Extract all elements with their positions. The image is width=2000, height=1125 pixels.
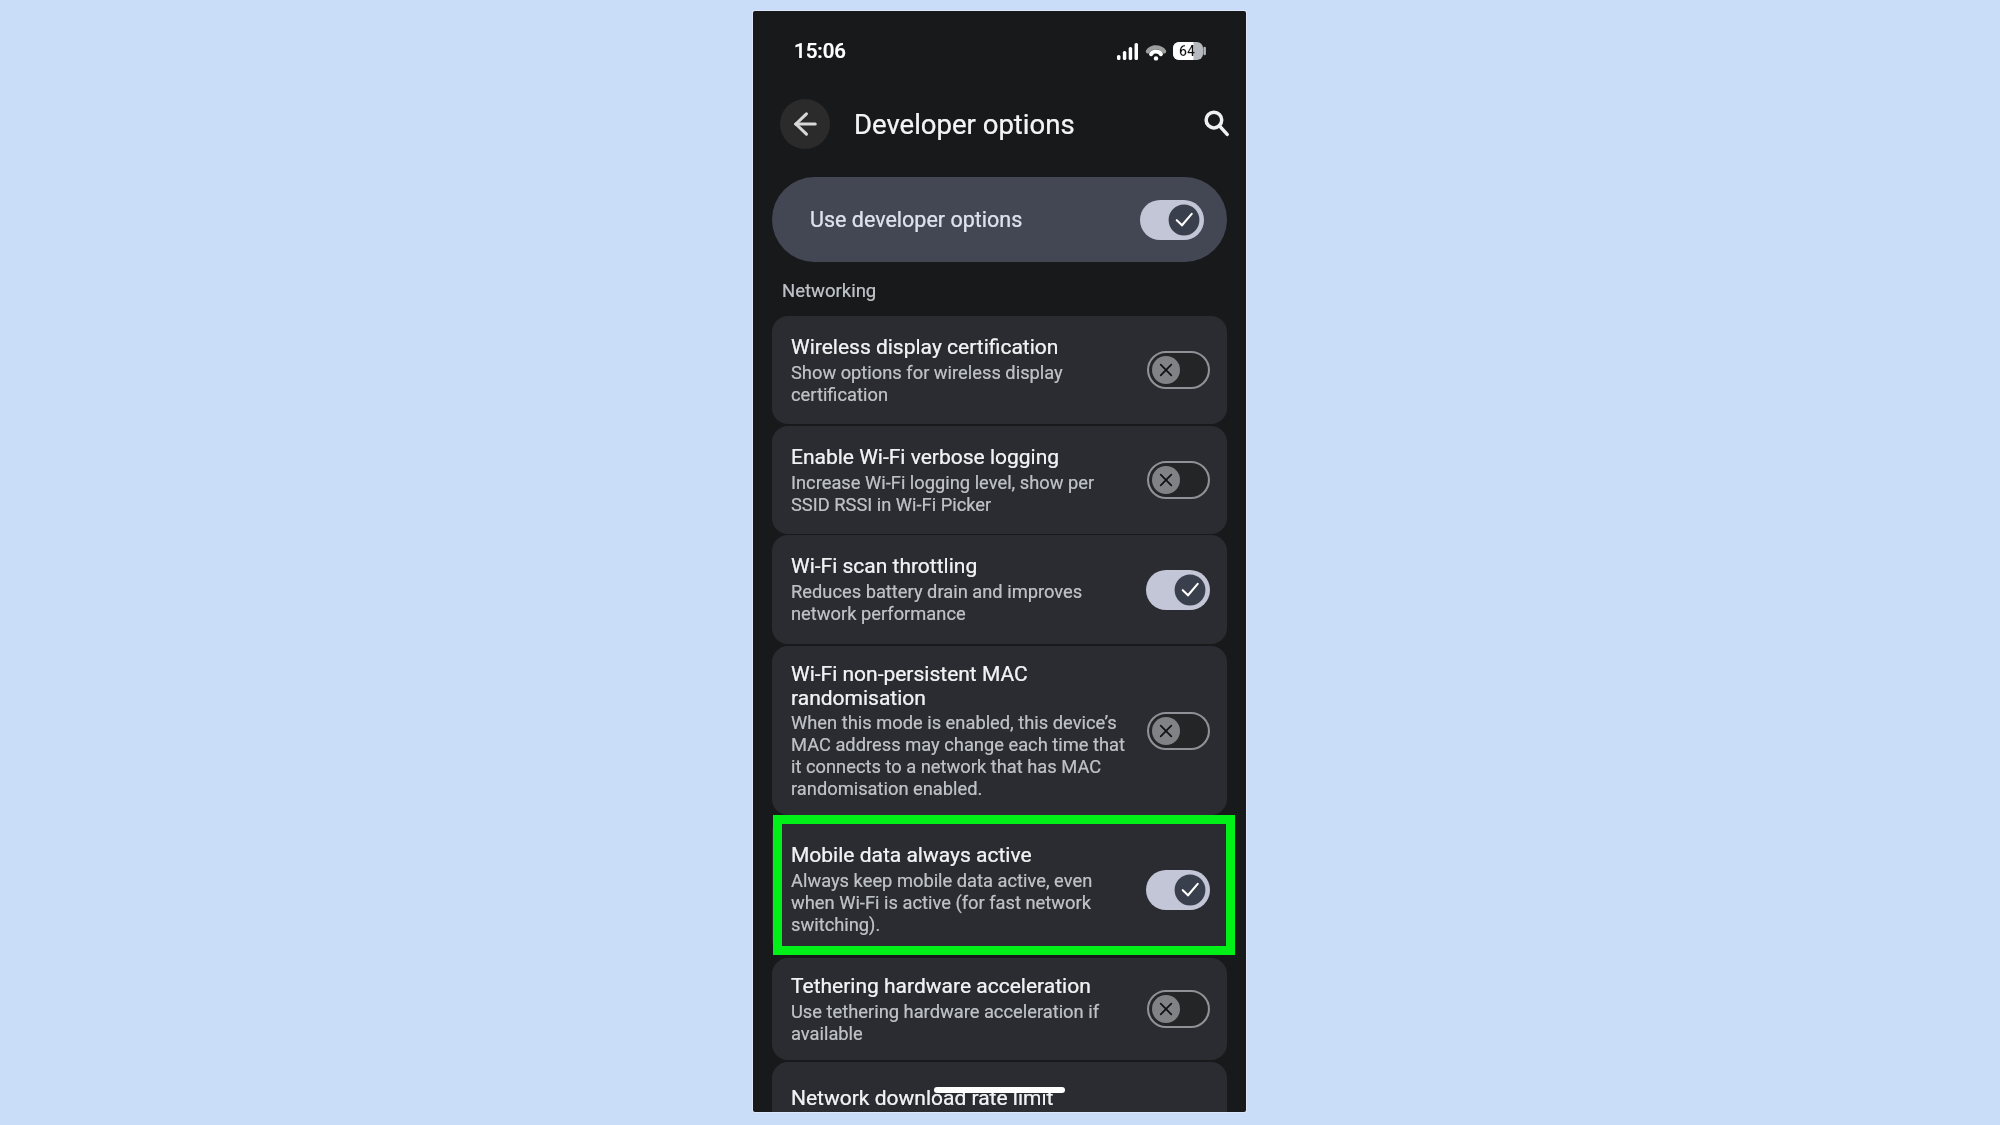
- button[interactable]: Wi-Fi non-persistent MAC randomisation: [772, 646, 1227, 815]
- staticText: Wi-Fi scan throttling: [791, 554, 978, 579]
- button[interactable]: Back: [780, 99, 830, 149]
- staticText: 64: [1179, 43, 1195, 59]
- staticText: Enable Wi-Fi verbose logging: [791, 445, 1060, 470]
- staticText: Show options for wireless display certif…: [791, 362, 1063, 406]
- staticText: Increase Wi-Fi logging level, show per S…: [791, 472, 1095, 516]
- button[interactable]: Enable Wi-Fi verbose logging: [772, 426, 1227, 534]
- staticText: Wi-Fi non-persistent MAC randomisation: [791, 662, 1028, 710]
- staticText: 15:06: [794, 39, 847, 63]
- button[interactable]: Switch off: [1147, 990, 1210, 1028]
- staticText: Wireless display certification: [791, 335, 1059, 360]
- staticText: Tethering hardware acceleration: [791, 974, 1091, 999]
- button[interactable]: Mobile data always active: [772, 815, 1227, 955]
- staticText: Developer options: [854, 108, 1075, 140]
- button[interactable]: Search: [1195, 103, 1237, 145]
- button[interactable]: Wireless display certification: [772, 316, 1227, 424]
- button[interactable]: Tethering hardware acceleration: [772, 958, 1227, 1060]
- staticText: Use tethering hardware acceleration if a…: [791, 1001, 1100, 1045]
- staticText: Use developer options: [810, 207, 1140, 232]
- staticText: Always keep mobile data active, even whe…: [791, 870, 1093, 936]
- button[interactable]: Switch on: [1146, 870, 1210, 910]
- staticText: Reduces battery drain and improves netwo…: [791, 581, 1083, 625]
- button[interactable]: Use developer options: [772, 177, 1227, 262]
- button[interactable]: Switch on: [1146, 570, 1210, 610]
- staticText: Network download rate limit: [791, 1086, 1054, 1111]
- staticText: Mobile data always active: [791, 843, 1032, 868]
- button[interactable]: Switch off: [1147, 351, 1210, 389]
- button[interactable]: Switch off: [1147, 461, 1210, 499]
- button[interactable]: Network download rate limit: [772, 1062, 1227, 1112]
- button[interactable]: Switch off: [1147, 712, 1210, 750]
- staticText: Networking: [782, 280, 877, 302]
- button[interactable]: Wi-Fi scan throttling: [772, 535, 1227, 644]
- button[interactable]: Switch on: [1140, 200, 1204, 240]
- staticText: When this mode is enabled, this device’s…: [791, 712, 1126, 800]
